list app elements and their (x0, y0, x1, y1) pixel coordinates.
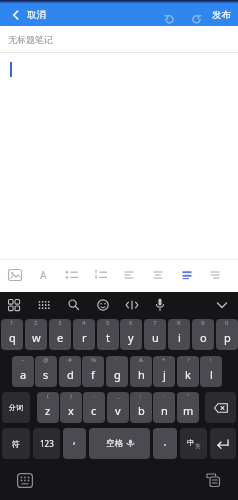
button[interactable]: ; (130, 392, 152, 423)
button[interactable]: " (177, 392, 199, 423)
button[interactable]: - (83, 392, 105, 423)
staticText: k (185, 367, 191, 382)
staticText: % (91, 356, 96, 364)
button[interactable]: ~ (12, 356, 34, 387)
button[interactable]: ( (37, 392, 59, 423)
staticText: 符 (12, 439, 20, 449)
staticText: 6 (129, 319, 133, 327)
button[interactable]: 符 (2, 428, 30, 459)
button[interactable] (209, 292, 235, 318)
button[interactable]: 3 (49, 319, 71, 350)
staticText: t (106, 330, 110, 345)
button[interactable] (116, 262, 142, 288)
button[interactable] (2, 262, 28, 288)
button[interactable] (210, 428, 236, 459)
button[interactable] (61, 292, 87, 318)
button[interactable] (59, 262, 85, 288)
staticText: ! (210, 356, 212, 364)
button[interactable]: 6 (120, 319, 142, 350)
staticText: _ (117, 392, 120, 400)
staticText: ? (187, 356, 190, 364)
button[interactable]: 0 (216, 319, 238, 350)
staticText: ; (140, 392, 142, 400)
button[interactable] (205, 392, 236, 423)
staticText: c (91, 403, 97, 418)
button[interactable]: _ (107, 392, 129, 423)
staticText: ' (116, 356, 118, 364)
button[interactable] (31, 292, 57, 318)
staticText: ) (70, 392, 72, 400)
staticText: m (183, 403, 194, 418)
button[interactable]: 123 (33, 428, 60, 459)
button[interactable]: 空格 (89, 428, 150, 459)
staticText: q (9, 330, 16, 345)
button[interactable]: 2 (25, 319, 47, 350)
button[interactable]: ) (60, 392, 82, 423)
button[interactable] (88, 262, 114, 288)
staticText: 9 (201, 319, 205, 327)
staticText: A (40, 268, 47, 282)
button[interactable]: * (153, 356, 175, 387)
staticText: a (20, 367, 27, 382)
staticText: " (187, 392, 190, 400)
staticText: f (91, 367, 95, 382)
button[interactable] (1, 292, 27, 318)
button[interactable]: 发布 (212, 9, 238, 21)
button[interactable]: 5 (97, 319, 119, 350)
button[interactable]: 中 (180, 428, 207, 459)
button[interactable] (145, 262, 171, 288)
button[interactable]: ? (177, 356, 199, 387)
staticText: o (200, 330, 207, 345)
staticText: w (32, 330, 41, 345)
button[interactable] (90, 292, 116, 318)
staticText: : (163, 392, 165, 400)
button[interactable]: 取消 (0, 9, 46, 21)
button[interactable]: 1 (1, 319, 23, 350)
staticText: 。 (163, 436, 172, 447)
button[interactable]: 4 (73, 319, 95, 350)
staticText: & (139, 356, 144, 364)
button[interactable] (202, 262, 228, 288)
staticText: r (82, 330, 87, 345)
button[interactable]: 8 (168, 319, 190, 350)
button[interactable]: , (63, 428, 86, 459)
button[interactable]: 。 (153, 428, 177, 459)
button[interactable]: @ (35, 356, 57, 387)
staticText: @ (43, 356, 49, 364)
staticText: , (73, 433, 76, 447)
staticText: * (162, 356, 166, 364)
staticText: 发布 (212, 9, 231, 21)
staticText: 取消 (27, 9, 46, 21)
button[interactable]: 7 (144, 319, 166, 350)
staticText: x (68, 403, 74, 418)
staticText: p (224, 330, 231, 345)
button[interactable]: 分词 (2, 392, 30, 423)
button[interactable]: & (130, 356, 152, 387)
staticText: 123 (40, 438, 54, 449)
staticText: 无标题笔记 (8, 34, 53, 45)
staticText: h (138, 367, 145, 382)
staticText: 1 (10, 319, 14, 327)
button[interactable]: # (59, 356, 81, 387)
staticText: 英 (195, 443, 201, 450)
button[interactable] (200, 467, 226, 493)
button[interactable]: % (82, 356, 104, 387)
button[interactable]: 9 (192, 319, 214, 350)
staticText: g (114, 367, 121, 382)
button[interactable]: ! (200, 356, 222, 387)
button[interactable] (174, 262, 200, 288)
staticText: 中 (187, 438, 194, 447)
button[interactable] (119, 292, 145, 318)
button[interactable]: ' (106, 356, 128, 387)
button[interactable] (162, 11, 177, 26)
staticText: i (178, 330, 181, 345)
staticText: y (128, 330, 134, 345)
button[interactable] (147, 292, 173, 318)
staticText: d (67, 367, 74, 382)
button[interactable]: A (30, 262, 56, 288)
staticText: 4 (82, 319, 86, 327)
button[interactable]: : (153, 392, 175, 423)
button[interactable] (189, 11, 204, 26)
button[interactable] (12, 467, 38, 493)
staticText: ( (47, 392, 49, 400)
